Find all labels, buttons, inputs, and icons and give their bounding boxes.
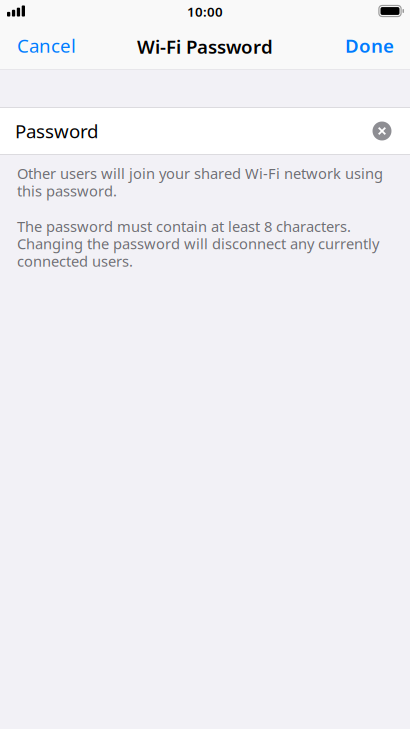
staticText: 10:00 [187,3,223,20]
staticText: The password must contain at least 8 cha… [17,216,379,271]
staticText: Password [15,119,98,143]
staticText: Cancel [17,33,76,58]
button[interactable]: Done [331,23,410,70]
button[interactable]: Clear text [360,109,404,153]
staticText: Wi-Fi Password [137,34,273,59]
staticText: Other users will join your shared Wi-Fi … [17,163,383,200]
button[interactable]: Cancel [0,23,90,70]
button[interactable]: Password [0,108,410,154]
staticText: Done [345,33,394,58]
